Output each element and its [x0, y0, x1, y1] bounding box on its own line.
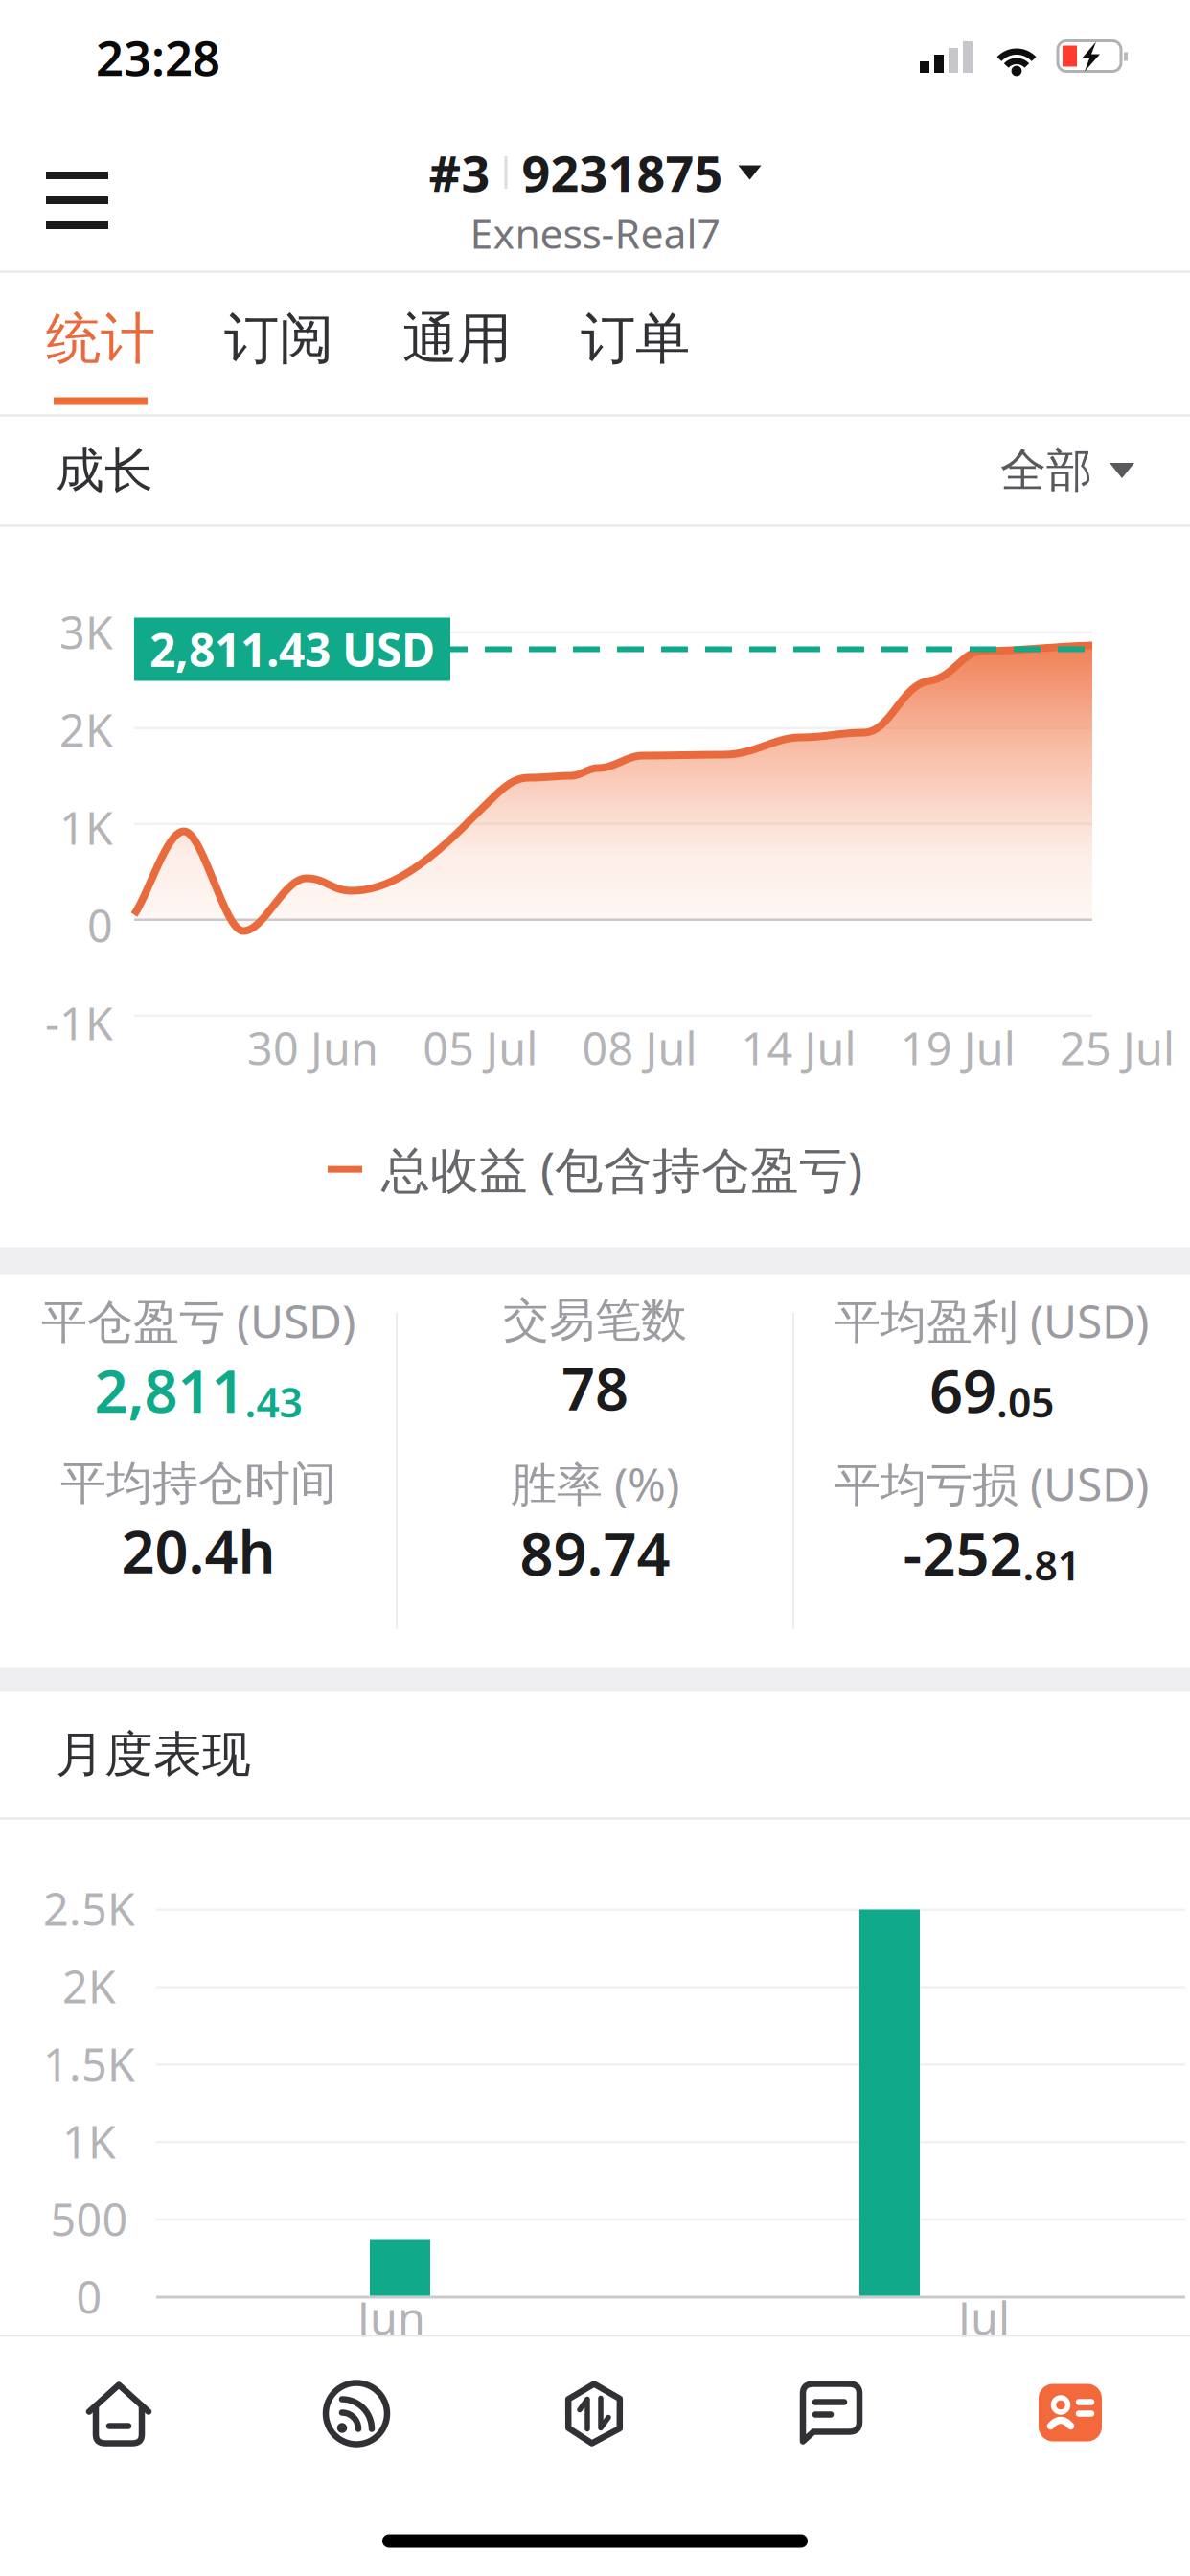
staticText: 78	[561, 1349, 629, 1427]
staticText: Exness-Real7	[470, 206, 720, 260]
staticText: 14 Jul	[741, 1018, 856, 1078]
button[interactable]: Menu	[0, 118, 143, 267]
button[interactable]: Home	[0, 2337, 238, 2473]
staticText: 通用	[402, 305, 512, 373]
staticText: 成长	[56, 441, 153, 500]
button[interactable]: Profile	[950, 2337, 1190, 2473]
staticText: 25 Jul	[1060, 1018, 1175, 1078]
staticText: Jun	[357, 2288, 425, 2347]
staticText: .81	[1023, 1538, 1080, 1592]
staticText: .43	[245, 1375, 302, 1429]
staticText: Jul	[958, 2288, 1010, 2347]
staticText: 05 Jul	[423, 1018, 538, 1078]
staticText: 9231875	[522, 139, 723, 206]
button[interactable]: Messages	[713, 2337, 950, 2473]
button[interactable]: 统计	[11, 273, 190, 414]
button[interactable]: 通用	[368, 273, 546, 414]
staticText: 3K	[59, 602, 113, 662]
staticText: 订单	[581, 305, 690, 373]
staticText: 平均盈利 (USD)	[835, 1290, 1149, 1351]
staticText: 2,811	[94, 1351, 245, 1429]
staticText: 平仓盈亏 (USD)	[41, 1290, 355, 1351]
staticText: 订阅	[224, 305, 333, 373]
staticText: 1K	[59, 798, 113, 857]
staticText: 08 Jul	[582, 1018, 697, 1078]
staticText: 2K	[62, 1956, 116, 2016]
staticText: 500	[50, 2189, 128, 2249]
button[interactable]: 订阅	[190, 273, 368, 414]
staticText: 全部	[1000, 442, 1092, 499]
staticText: 0	[76, 2267, 102, 2326]
staticText: 1.5K	[43, 2034, 135, 2093]
staticText: 20.4h	[121, 1512, 275, 1590]
staticText: .05	[996, 1375, 1054, 1429]
staticText: 19 Jul	[900, 1018, 1015, 1078]
staticText: 2,811.43 USD	[149, 619, 435, 680]
staticText: 30 Jun	[247, 1018, 378, 1078]
staticText: 交易笔数	[503, 1292, 687, 1349]
button[interactable]: Feed	[238, 2337, 475, 2473]
staticText: -252	[903, 1514, 1023, 1592]
staticText: 总收益 (包含持仓盈亏)	[381, 1137, 862, 1202]
staticText: 胜率 (%)	[511, 1453, 679, 1514]
staticText: 2.5K	[43, 1879, 135, 1938]
staticText: 69	[929, 1351, 996, 1429]
staticText: 89.74	[520, 1514, 670, 1592]
staticText: 23:28	[96, 25, 220, 89]
staticText: -1K	[45, 993, 113, 1053]
staticText: 统计	[46, 305, 155, 373]
button[interactable]: #3	[429, 139, 761, 206]
staticText: 2K	[59, 700, 113, 759]
button[interactable]: 全部	[1000, 421, 1134, 520]
staticText: 平均亏损 (USD)	[835, 1453, 1149, 1514]
staticText: 1K	[62, 2112, 116, 2171]
button[interactable]: Trade	[475, 2337, 713, 2473]
staticText: 月度表现	[56, 1725, 251, 1785]
staticText: 0	[87, 896, 113, 955]
staticText: 平均持仓时间	[60, 1455, 336, 1512]
button[interactable]: 订单	[546, 273, 724, 414]
staticText: #3	[429, 139, 490, 206]
